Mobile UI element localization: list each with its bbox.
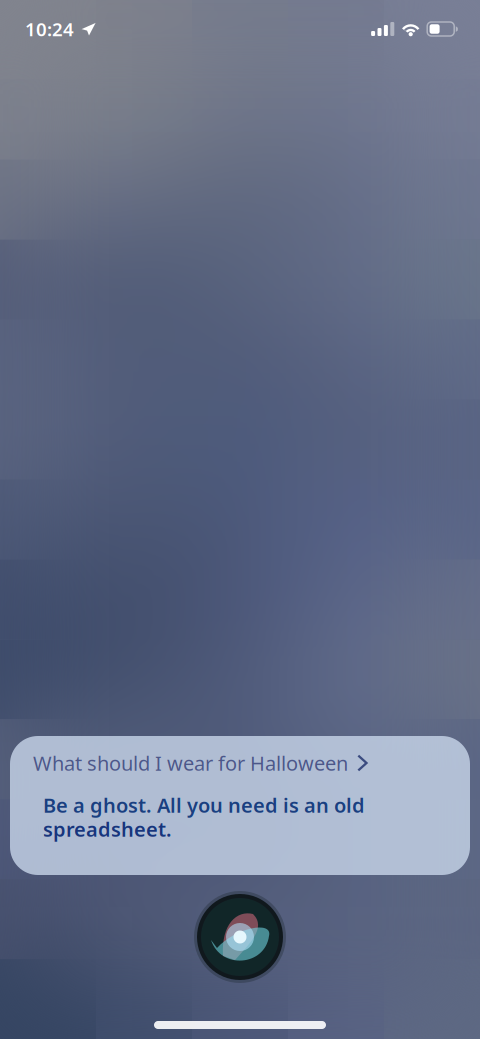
button[interactable]: Siri — [194, 891, 286, 983]
staticText: 10:24 — [25, 17, 74, 41]
staticText: Be a ghost. All you need is an old — [43, 792, 365, 818]
staticText: spreadsheet. — [43, 816, 172, 842]
staticText: What should I wear for Halloween — [33, 750, 348, 776]
button[interactable]: What should I wear for Halloween — [10, 748, 470, 778]
